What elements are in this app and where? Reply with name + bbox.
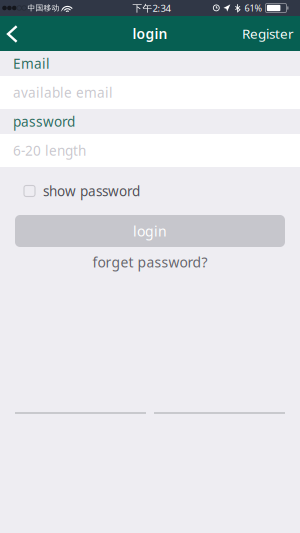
staticText: password [13,112,75,131]
staticText: Register [242,24,294,43]
staticText: 6-20 length [13,141,86,160]
staticText: login [133,221,167,241]
staticText: 61% [244,2,262,14]
button[interactable]: show password [0,167,300,215]
staticText: 中国移动 [27,3,59,13]
staticText: 下午2:34 [132,1,170,15]
staticText: Email [13,54,50,73]
button[interactable]: Register [232,16,300,51]
staticText: forget password? [92,253,207,271]
button[interactable]: login [15,215,285,247]
staticText: available email [13,83,113,102]
button[interactable]: Back [0,16,30,51]
staticText: show password [43,182,140,200]
button[interactable]: forget password? [82,251,217,273]
staticText: login [132,24,167,43]
